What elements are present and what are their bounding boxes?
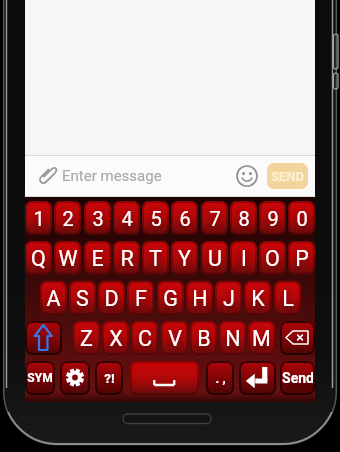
staticText: 4 bbox=[121, 207, 133, 230]
staticText: Send bbox=[282, 370, 314, 386]
staticText: G bbox=[163, 286, 178, 311]
staticText: T bbox=[149, 246, 162, 271]
staticText: K bbox=[251, 286, 265, 311]
staticText: 9 bbox=[267, 207, 279, 230]
staticText: Y bbox=[178, 246, 191, 271]
staticText: Enter message bbox=[62, 167, 162, 185]
staticText: R bbox=[120, 246, 134, 271]
staticText: 7 bbox=[209, 207, 221, 230]
staticText: M bbox=[252, 326, 271, 351]
staticText: O bbox=[265, 246, 280, 271]
staticText: J bbox=[223, 286, 235, 311]
staticText: 2 bbox=[62, 207, 74, 230]
staticText: 3 bbox=[92, 207, 104, 230]
staticText: P bbox=[295, 246, 309, 271]
staticText: F bbox=[135, 286, 147, 311]
staticText: Q bbox=[31, 246, 46, 271]
staticText: U bbox=[208, 246, 222, 271]
staticText: Z bbox=[80, 326, 93, 351]
staticText: 0 bbox=[296, 207, 308, 230]
staticText: L bbox=[282, 286, 294, 311]
staticText: H bbox=[192, 286, 208, 311]
staticText: D bbox=[104, 286, 119, 311]
staticText: A bbox=[46, 286, 61, 311]
staticText: X bbox=[109, 326, 123, 351]
staticText: . , bbox=[215, 371, 226, 386]
staticText: SEND bbox=[271, 169, 304, 184]
staticText: S bbox=[76, 286, 89, 311]
staticText: N bbox=[225, 326, 241, 351]
staticText: 5 bbox=[150, 207, 162, 230]
staticText: E bbox=[91, 246, 104, 271]
staticText: B bbox=[197, 326, 211, 351]
staticText: ?! bbox=[104, 370, 115, 386]
staticText: 1 bbox=[33, 207, 45, 230]
staticText: 8 bbox=[238, 207, 250, 230]
staticText: SYM bbox=[27, 371, 53, 385]
staticText: I bbox=[241, 246, 247, 271]
staticText: V bbox=[168, 326, 182, 351]
staticText: C bbox=[138, 326, 152, 351]
staticText: 6 bbox=[179, 207, 191, 230]
staticText: W bbox=[58, 246, 78, 271]
